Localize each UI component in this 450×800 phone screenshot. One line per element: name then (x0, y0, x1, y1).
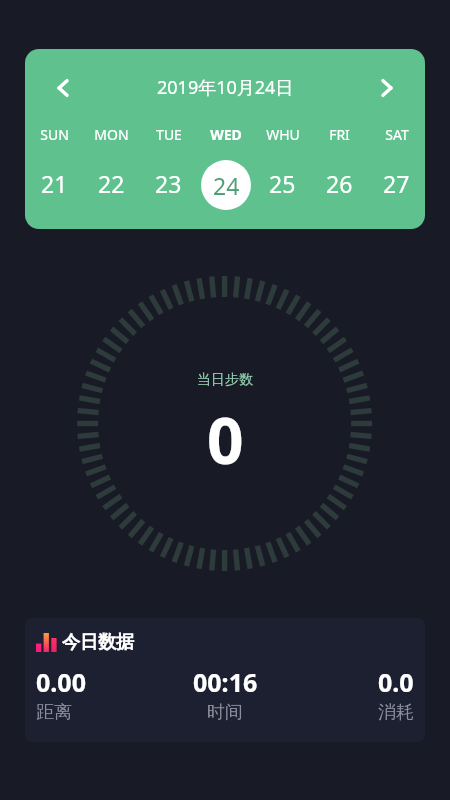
staticText: 26 (326, 168, 353, 199)
staticText: 21 (41, 168, 68, 199)
button[interactable]: 22 (83, 158, 140, 208)
staticText: 27 (383, 168, 410, 199)
staticText: WED (210, 125, 242, 144)
staticText: 0.00 (36, 665, 86, 699)
staticText: 00:16 (193, 665, 258, 699)
staticText: FRI (329, 125, 350, 144)
staticText: 2019年10月24日 (157, 75, 294, 100)
button[interactable]: 27 (368, 158, 425, 208)
staticText: 今日数据 (62, 631, 134, 654)
button[interactable]: Previous day (45, 70, 81, 106)
staticText: SAT (385, 125, 409, 144)
staticText: TUE (156, 125, 182, 144)
button[interactable]: 21 (25, 158, 83, 208)
staticText: 25 (269, 168, 296, 199)
staticText: 23 (155, 168, 182, 199)
staticText: 时间 (207, 701, 243, 724)
staticText: MON (94, 125, 129, 144)
staticText: 距离 (36, 701, 72, 724)
staticText: 0 (207, 396, 244, 483)
staticText: 消耗 (378, 701, 414, 724)
staticText: WHU (266, 125, 300, 144)
button[interactable]: Next day (369, 70, 405, 106)
staticText: 22 (98, 168, 125, 199)
staticText: SUN (40, 125, 69, 144)
button[interactable]: 25 (254, 158, 311, 208)
button[interactable]: 24 (197, 158, 254, 208)
button[interactable]: 26 (311, 158, 368, 208)
button[interactable]: 今日数据 (25, 618, 425, 742)
staticText: 24 (213, 170, 240, 201)
staticText: 当日步数 (197, 371, 253, 389)
button[interactable]: 23 (140, 158, 197, 208)
staticText: 0.0 (378, 665, 414, 699)
